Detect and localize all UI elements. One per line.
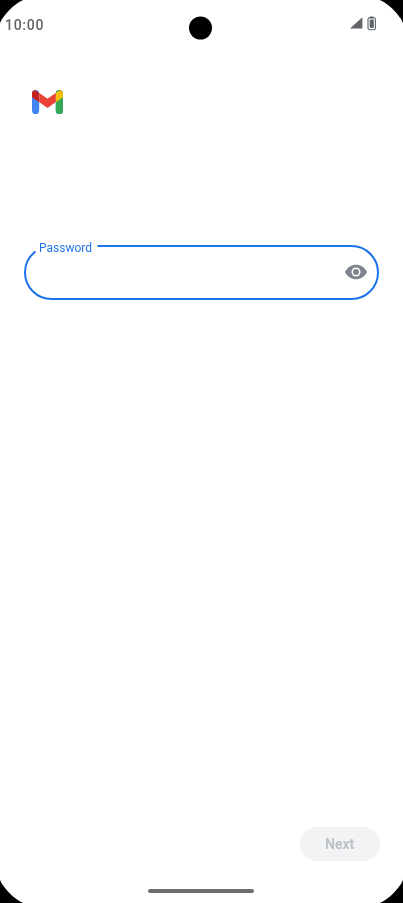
button[interactable]: Password [24,245,379,300]
button[interactable]: Next [300,827,380,861]
button[interactable]: Show password [332,248,380,296]
staticText: Next [325,836,355,852]
staticText: Password [39,241,93,255]
button[interactable]: Home [148,889,254,893]
other: Gmail [32,90,63,114]
staticText: 10:00 [5,17,45,33]
